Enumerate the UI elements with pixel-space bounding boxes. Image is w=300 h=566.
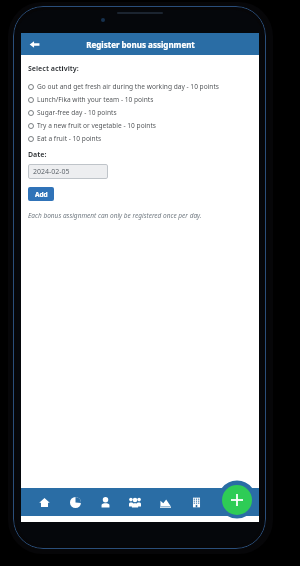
button[interactable]: Lunch/Fika with your team - 10 points xyxy=(28,93,252,106)
button[interactable]: Go out and get fresh air during the work… xyxy=(28,80,252,93)
button[interactable]: Add xyxy=(28,187,54,201)
button[interactable]: Eat a fruit - 10 points xyxy=(28,132,252,145)
button[interactable]: Company xyxy=(185,491,207,513)
button[interactable]: Teams xyxy=(124,491,146,513)
staticText: Date: xyxy=(28,150,47,160)
staticText: Eat a fruit - 10 points xyxy=(37,134,102,143)
button[interactable]: Statistics xyxy=(64,491,86,513)
staticText: Sugar-free day - 10 points xyxy=(37,108,117,117)
button[interactable]: Back xyxy=(25,35,43,53)
button[interactable]: 2024-02-05 xyxy=(28,164,108,179)
staticText: Try a new fruit or vegetable - 10 points xyxy=(37,121,156,130)
staticText: Select activity: xyxy=(28,64,79,74)
staticText: 2024-02-05 xyxy=(33,167,70,177)
staticText: Go out and get fresh air during the work… xyxy=(37,82,219,91)
button[interactable]: Add xyxy=(222,485,252,515)
button[interactable]: Home xyxy=(33,491,55,513)
staticText: Lunch/Fika with your team - 10 points xyxy=(37,95,154,104)
staticText: Each bonus assignment can only be regist… xyxy=(28,211,202,220)
button[interactable]: Profile xyxy=(94,491,116,513)
button[interactable]: Sugar-free day - 10 points xyxy=(28,106,252,119)
button[interactable]: Charts xyxy=(154,491,176,513)
staticText: Add xyxy=(35,190,48,199)
button[interactable]: Try a new fruit or vegetable - 10 points xyxy=(28,119,252,132)
staticText: Register bonus assignment xyxy=(86,39,195,50)
